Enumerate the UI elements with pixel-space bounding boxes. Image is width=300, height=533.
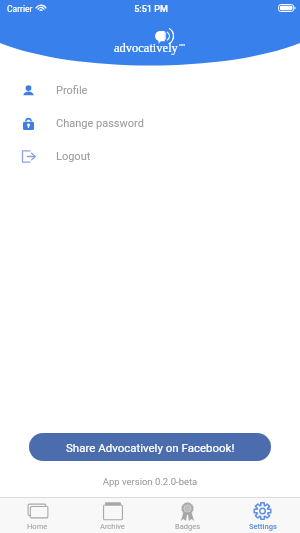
staticText: Profile bbox=[56, 84, 88, 97]
button[interactable]: Settings bbox=[225, 497, 300, 533]
button[interactable]: Archive bbox=[75, 497, 150, 533]
button[interactable]: Badges bbox=[150, 497, 225, 533]
staticText: Carrier bbox=[7, 4, 33, 14]
other: Logout bbox=[21, 150, 36, 163]
staticText: Logout bbox=[56, 150, 91, 163]
staticText: sm bbox=[179, 42, 185, 48]
other: Change password bbox=[23, 118, 34, 130]
button[interactable]: Logout bbox=[0, 140, 300, 173]
staticText: Share Advocatively on Facebook! bbox=[66, 441, 235, 454]
other: Profile bbox=[22, 85, 35, 97]
staticText: Change password bbox=[56, 117, 144, 130]
staticText: Badges bbox=[175, 522, 201, 531]
staticText: advocatively bbox=[114, 41, 178, 55]
button[interactable]: Profile bbox=[0, 74, 300, 107]
staticText: Home bbox=[27, 522, 48, 531]
button[interactable]: Share Advocatively on Facebook! bbox=[29, 433, 271, 461]
staticText: Settings bbox=[249, 522, 277, 531]
staticText: App version 0.2.0-beta bbox=[0, 476, 300, 487]
staticText: Archive bbox=[100, 522, 125, 531]
button[interactable]: Home bbox=[0, 497, 75, 533]
button[interactable]: Change password bbox=[0, 107, 300, 140]
staticText: 5:51 PM bbox=[1, 4, 300, 15]
